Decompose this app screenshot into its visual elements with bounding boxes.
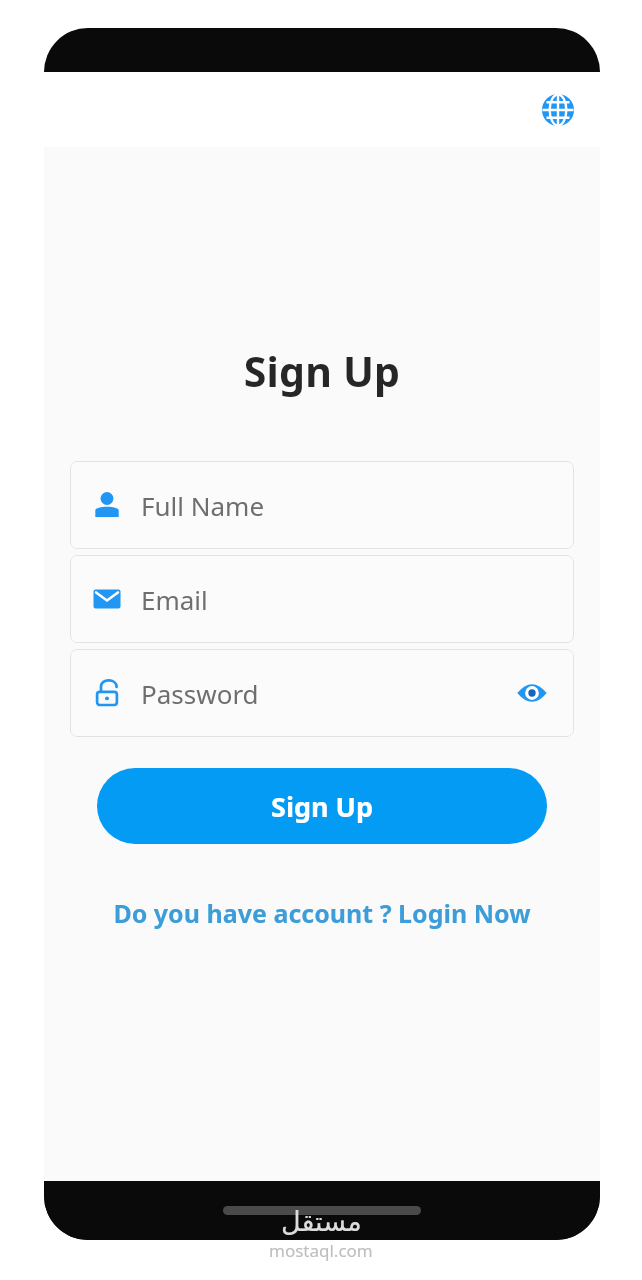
staticText: Sign Up (271, 788, 374, 825)
button[interactable]: Password (70, 649, 574, 737)
staticText: Full Name (141, 488, 265, 523)
button[interactable]: Change language (534, 86, 582, 134)
staticText: مستقل (281, 1206, 362, 1237)
staticText: Email (141, 582, 208, 617)
button[interactable]: Do you have account ? Login Now (84, 890, 560, 936)
button[interactable]: Show password (510, 671, 554, 715)
button[interactable]: Sign Up (97, 768, 547, 844)
staticText: Do you have account ? Login Now (113, 896, 531, 930)
button[interactable]: Email (70, 555, 574, 643)
staticText: mostaql.com (269, 1239, 373, 1262)
staticText: Password (141, 676, 259, 711)
button[interactable]: Full Name (70, 461, 574, 549)
staticText: Sign Up (44, 343, 600, 399)
